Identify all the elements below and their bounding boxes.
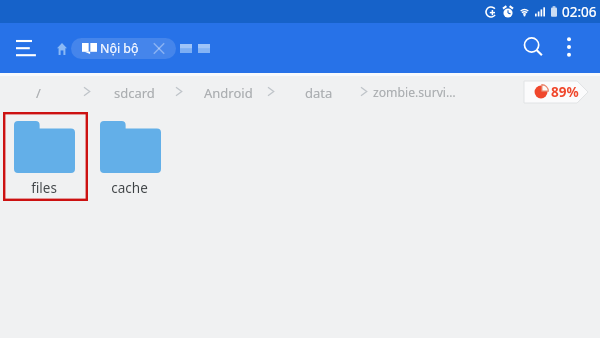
staticText: / [36,84,41,102]
button[interactable]: Android [204,81,253,105]
button[interactable]: 89% [524,81,588,103]
button[interactable]: Search [516,30,550,64]
staticText: data [305,84,333,102]
staticText: zombie.survi… [373,84,456,101]
staticText: sdcard [114,84,155,102]
button[interactable]: Home [48,31,76,65]
button[interactable]: sdcard [114,81,155,105]
button[interactable]: Tab 2 [198,44,210,53]
staticText: Nội bộ [100,40,139,57]
button[interactable]: / [36,81,41,105]
staticText: files [31,179,57,197]
button[interactable]: More options [552,30,586,64]
button[interactable]: zombie.survi… [373,81,456,104]
button[interactable]: cache [89,112,174,201]
staticText: 02:06 [562,3,597,21]
button[interactable]: Nội bộ [71,38,176,59]
button[interactable]: files [3,112,88,201]
button[interactable]: Menu [8,31,44,65]
staticText: Android [204,84,253,102]
button[interactable]: Tab 1 [180,44,192,53]
staticText: cache [111,179,148,197]
button[interactable]: Close [150,38,168,59]
staticText: 89% [551,83,579,101]
button[interactable]: data [305,81,333,105]
